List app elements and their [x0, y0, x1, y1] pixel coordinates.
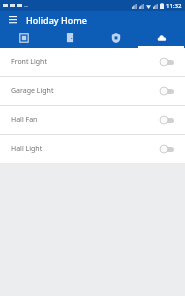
button[interactable]: Off: [156, 143, 174, 155]
staticText: Hall Light: [11, 144, 156, 154]
button[interactable]: Front Light: [0, 48, 185, 76]
staticText: Garage Light: [11, 86, 156, 96]
button[interactable]: Off: [156, 56, 174, 68]
button[interactable]: Off: [156, 85, 174, 97]
button[interactable]: Doors: [47, 28, 93, 48]
button[interactable]: Garage Light: [0, 77, 185, 105]
button[interactable]: Lights: [0, 28, 47, 48]
button[interactable]: Hall Light: [0, 135, 185, 163]
staticText: 11:32: [166, 2, 182, 10]
button[interactable]: Hall Fan: [0, 106, 185, 134]
staticText: Hall Fan: [11, 115, 156, 125]
button[interactable]: Open navigation menu: [6, 13, 19, 26]
button[interactable]: Security: [93, 28, 139, 48]
button[interactable]: Off: [156, 114, 174, 126]
staticText: Front Light: [11, 57, 156, 67]
button[interactable]: Cloud: [139, 28, 185, 48]
staticText: Holiday Home: [26, 14, 87, 26]
